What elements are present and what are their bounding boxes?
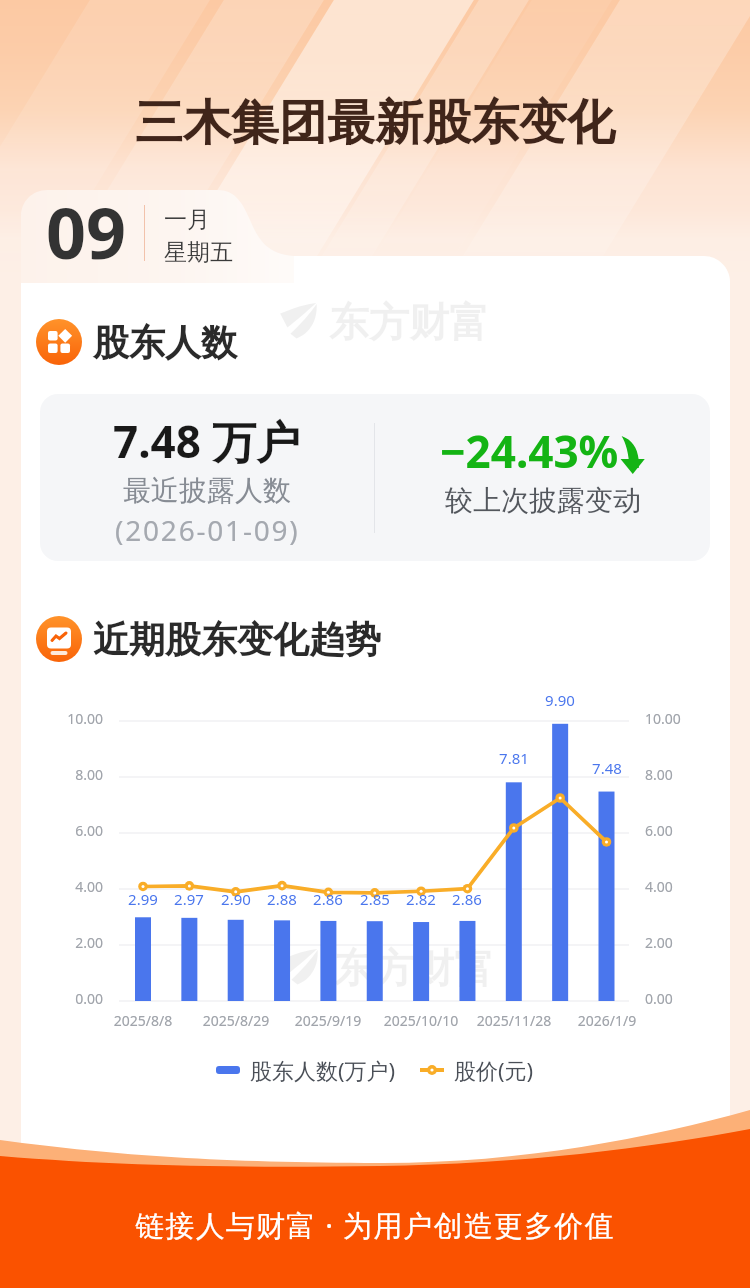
button[interactable]: 股东人数	[36, 318, 237, 366]
staticText: 7.48 万户	[113, 411, 301, 471]
staticText: 7.81	[482, 748, 546, 768]
staticText: 东方财富	[329, 297, 489, 347]
staticText: 10.00	[645, 709, 707, 728]
staticText: 8.00	[645, 765, 707, 784]
staticText: 股价(元)	[454, 1055, 534, 1085]
staticText: 2025/9/19	[268, 1011, 388, 1030]
staticText: 2.86	[296, 889, 360, 909]
staticText: 三木集团最新股东变化	[0, 93, 750, 153]
staticText: 0.00	[41, 989, 103, 1008]
staticText: (2026-01-09)	[115, 511, 300, 549]
staticText: 10.00	[41, 709, 103, 728]
staticText: 2026/1/9	[547, 1011, 667, 1030]
staticText: 较上次披露变动	[445, 483, 641, 518]
staticText: 6.00	[645, 821, 707, 840]
staticText: 股东人数(万户)	[250, 1055, 396, 1085]
staticText: 2025/10/10	[361, 1011, 481, 1030]
staticText: 7.48	[575, 758, 639, 778]
staticText: 2.00	[645, 933, 707, 952]
staticText: 2.86	[435, 889, 499, 909]
staticText: 一月	[164, 205, 210, 234]
staticText: 2025/8/8	[83, 1011, 203, 1030]
staticText: 链接人与财富 · 为用户创造更多价值	[0, 1205, 750, 1245]
staticText: 星期五	[164, 238, 233, 267]
staticText: 6.00	[41, 821, 103, 840]
staticText: 东方财富	[334, 943, 494, 993]
staticText: 0.00	[645, 989, 707, 1008]
staticText: 2025/8/29	[176, 1011, 296, 1030]
staticText: 8.00	[41, 765, 103, 784]
staticText: 2.82	[389, 889, 453, 909]
staticText: 2.99	[111, 889, 175, 909]
staticText: 4.00	[41, 877, 103, 896]
button[interactable]: 股价(元)	[420, 1055, 534, 1085]
staticText: −24.43%	[440, 421, 619, 481]
staticText: 9.90	[528, 690, 592, 710]
button[interactable]: 股东人数(万户)	[216, 1055, 396, 1085]
staticText: 2.97	[157, 889, 221, 909]
staticText: 4.00	[645, 877, 707, 896]
button[interactable]: 近期股东变化趋势	[36, 616, 381, 662]
staticText: 股东人数	[93, 320, 237, 365]
staticText: 2.88	[250, 889, 314, 909]
staticText: 2.00	[41, 933, 103, 952]
staticText: 09	[46, 184, 127, 279]
staticText: 2025/11/28	[454, 1011, 574, 1030]
staticText: 2.85	[343, 889, 407, 909]
staticText: 最近披露人数	[123, 473, 291, 508]
button[interactable]: 7.48 万户	[40, 394, 710, 561]
staticText: 2.90	[204, 889, 268, 909]
staticText: 近期股东变化趋势	[93, 617, 381, 662]
